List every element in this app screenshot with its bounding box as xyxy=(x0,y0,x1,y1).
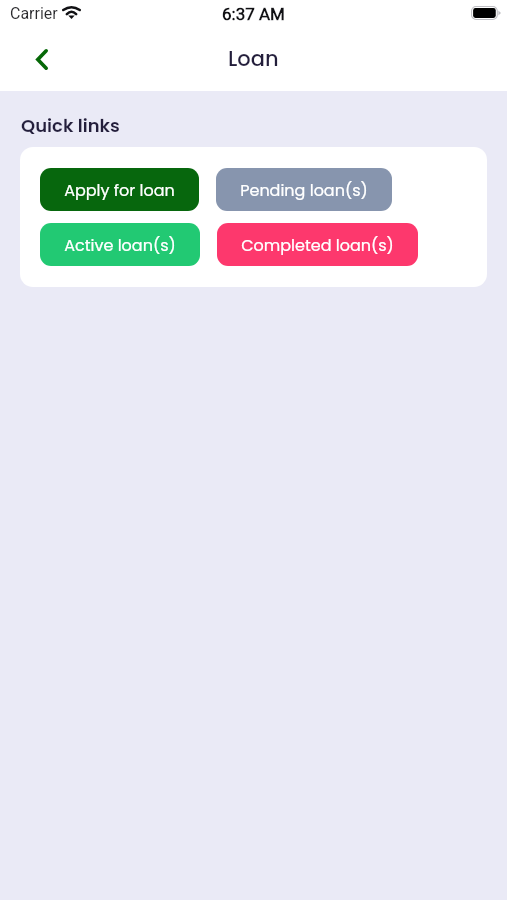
button[interactable]: Active loan(s) xyxy=(40,223,200,266)
staticText: Loan xyxy=(228,44,279,73)
button[interactable]: Pending loan(s) xyxy=(216,168,392,211)
staticText: Pending loan(s) xyxy=(240,179,368,201)
button[interactable]: Back xyxy=(20,37,64,81)
staticText: Apply for loan xyxy=(64,179,175,201)
staticText: Active loan(s) xyxy=(64,234,176,256)
staticText: Carrier xyxy=(10,4,58,23)
staticText: 6:37 AM xyxy=(222,4,285,24)
button[interactable]: Apply for loan xyxy=(40,168,199,211)
staticText: Quick links xyxy=(21,113,120,138)
button[interactable]: Completed loan(s) xyxy=(217,223,418,266)
staticText: Completed loan(s) xyxy=(241,234,394,256)
